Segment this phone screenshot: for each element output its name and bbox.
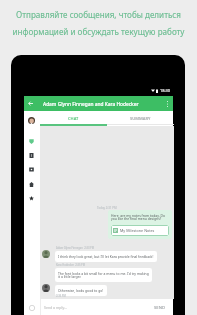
button[interactable]: Contact avatar [42,250,50,258]
button[interactable]: Otherwise, looks good to go! [55,285,107,296]
button[interactable]: Here are my notes from today. Do you lik… [108,210,172,239]
staticText: Adam Glynn Finnegan 2:33 PM [56,246,94,250]
button[interactable]: The font looks a bit small for a menu to… [55,268,152,282]
button[interactable]: Profile [28,117,35,124]
button[interactable]: Back [25,98,36,109]
staticText: The font looks a bit small for a menu to… [58,271,149,279]
staticText: SUMMARY [130,116,151,122]
staticText: Adam Glynn Finnegan and Kara Hodecker [43,101,139,108]
staticText: Send a reply... [44,305,67,310]
staticText: I think they look great, but I'll let Ka… [58,254,154,259]
staticText: 2:36 PM [56,294,66,298]
button[interactable]: More options [162,98,173,109]
staticText: Here are my notes from today. Do you lik… [111,213,166,221]
button[interactable]: Navigation item [27,151,36,160]
staticText: CHAT [68,116,79,122]
staticText: Otherwise, looks good to go! [58,288,104,293]
staticText: SEND [154,305,165,311]
button[interactable]: Navigation item [27,137,36,146]
staticText: Today 2:31 PM [97,206,117,210]
button[interactable]: I think they look great, but I'll let Ka… [55,251,157,262]
staticText: My Milestone Notes [120,228,155,233]
button[interactable]: Navigation item [27,180,36,189]
button[interactable]: Insert emoji [29,305,35,311]
button[interactable]: Contact avatar [42,284,50,292]
button[interactable]: Navigation item [27,165,36,174]
button[interactable]: SUMMARY [107,111,174,126]
staticText: Отправляйте сообщения, чтобы делиться ин… [0,9,197,37]
staticText: Kara Hodecker 2:35 PM [56,263,86,267]
button[interactable]: SEND [153,304,166,312]
staticText: 18:30 [160,88,170,93]
button[interactable]: CHAT [40,111,107,126]
button[interactable]: My Milestone Notes [111,225,169,236]
button[interactable]: Navigation item [27,194,36,203]
